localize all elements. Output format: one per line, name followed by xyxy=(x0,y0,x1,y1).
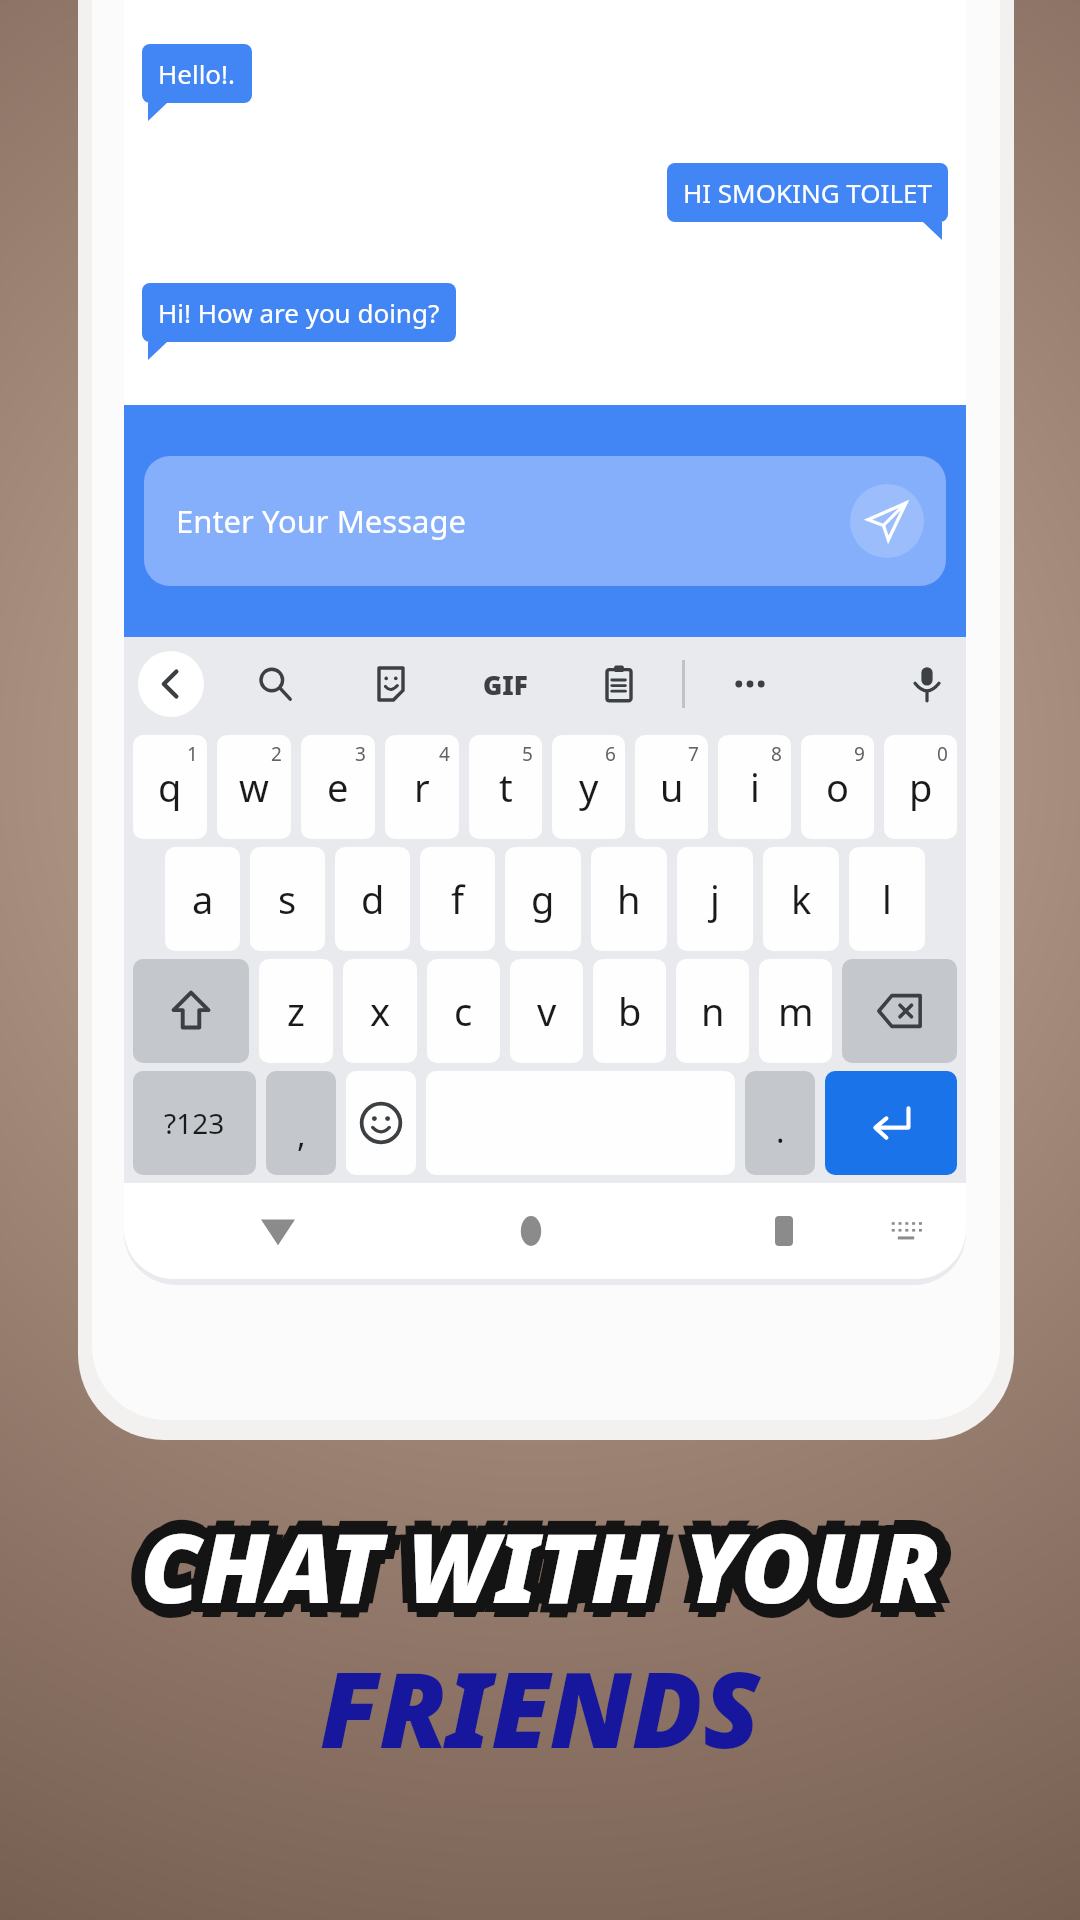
button[interactable]: i xyxy=(718,735,791,839)
staticText: CHAT WITH YOUR xyxy=(140,1500,941,1631)
staticText: h xyxy=(617,873,641,925)
button[interactable]: h xyxy=(591,847,667,951)
staticText: 4 xyxy=(439,741,450,767)
button[interactable]: g xyxy=(505,847,581,951)
button[interactable]: Search xyxy=(250,659,300,709)
button[interactable]: Back xyxy=(138,651,204,717)
button[interactable]: a xyxy=(165,847,240,951)
button[interactable]: b xyxy=(593,959,666,1063)
staticText: CHAT WITH YOUR xyxy=(126,1500,927,1631)
staticText: 3 xyxy=(355,741,366,767)
staticText: v xyxy=(537,985,557,1037)
button[interactable]: n xyxy=(676,959,749,1063)
button[interactable]: , xyxy=(266,1071,336,1175)
button[interactable]: Hello!. xyxy=(142,44,252,103)
button[interactable]: Stickers xyxy=(366,659,416,709)
staticText: 2 xyxy=(271,741,282,767)
staticText: m xyxy=(778,985,814,1037)
button[interactable]: Hide keyboard xyxy=(250,1203,306,1259)
staticText: CHAT WITH YOUR xyxy=(131,1509,932,1640)
button[interactable]: c xyxy=(427,959,500,1063)
button[interactable]: p xyxy=(884,735,957,839)
staticText: Hello!. xyxy=(158,56,236,91)
button[interactable]: u xyxy=(635,735,708,839)
staticText: a xyxy=(192,873,214,925)
staticText: y xyxy=(579,761,599,813)
button[interactable]: GIF xyxy=(482,661,528,707)
staticText: 7 xyxy=(688,741,699,767)
button[interactable]: l xyxy=(849,847,925,951)
button[interactable]: Emoji xyxy=(346,1071,416,1175)
button[interactable]: k xyxy=(763,847,839,951)
staticText: o xyxy=(826,761,849,813)
button[interactable]: Voice input xyxy=(902,659,952,709)
staticText: CHAT WITH YOUR xyxy=(131,1491,932,1622)
staticText: r xyxy=(414,761,430,813)
staticText: 5 xyxy=(522,741,533,767)
staticText: t xyxy=(499,761,513,813)
button[interactable]: Clipboard xyxy=(594,659,644,709)
staticText: q xyxy=(158,761,182,813)
button[interactable]: r xyxy=(385,735,459,839)
staticText: 0 xyxy=(937,741,948,767)
staticText: 1 xyxy=(187,741,198,767)
staticText: j xyxy=(710,873,720,925)
staticText: ?123 xyxy=(164,1104,225,1142)
button[interactable]: Switch keyboard xyxy=(878,1203,934,1259)
button[interactable]: Home xyxy=(503,1203,559,1259)
staticText: 8 xyxy=(771,741,782,767)
staticText: g xyxy=(531,873,555,925)
button[interactable]: Send xyxy=(850,484,924,558)
button[interactable]: m xyxy=(759,959,832,1063)
staticText: b xyxy=(618,985,642,1037)
staticText: c xyxy=(454,985,473,1037)
button[interactable]: More options xyxy=(725,659,775,709)
button[interactable]: . xyxy=(745,1071,815,1175)
button[interactable]: j xyxy=(677,847,753,951)
staticText: CHAT WITH YOUR xyxy=(140,1486,941,1617)
button[interactable]: Backspace xyxy=(842,959,957,1063)
staticText: z xyxy=(287,985,305,1037)
button[interactable]: f xyxy=(420,847,495,951)
staticText: u xyxy=(660,761,684,813)
button[interactable]: Hi! How are you doing? xyxy=(142,283,456,342)
staticText: n xyxy=(701,985,725,1037)
button[interactable]: d xyxy=(335,847,410,951)
button[interactable]: Enter xyxy=(825,1071,957,1175)
staticText: CHAT WITH YOUR xyxy=(131,1500,932,1631)
staticText: e xyxy=(327,761,349,813)
staticText: HI SMOKING TOILET xyxy=(683,175,932,210)
button[interactable]: q xyxy=(133,735,207,839)
staticText: f xyxy=(451,873,465,925)
staticText: . xyxy=(776,1109,785,1153)
staticText: CHAT WITH YOUR xyxy=(149,1491,950,1622)
staticText: GIF xyxy=(483,667,528,702)
staticText: i xyxy=(750,761,760,813)
staticText: w xyxy=(239,761,269,813)
staticText: 6 xyxy=(605,741,616,767)
button[interactable]: w xyxy=(217,735,291,839)
button[interactable]: Shift xyxy=(133,959,249,1063)
staticText: Hi! How are you doing? xyxy=(158,295,440,330)
staticText: , xyxy=(297,1113,306,1157)
button[interactable]: Recents xyxy=(756,1203,812,1259)
button[interactable]: t xyxy=(469,735,542,839)
button[interactable]: y xyxy=(552,735,625,839)
staticText: 9 xyxy=(854,741,865,767)
button[interactable]: o xyxy=(801,735,874,839)
button[interactable]: x xyxy=(343,959,417,1063)
button[interactable]: z xyxy=(259,959,333,1063)
staticText: CHAT WITH YOUR xyxy=(140,1509,941,1640)
button[interactable]: Enter Your Message xyxy=(144,456,946,586)
staticText: CHAT WITH YOUR xyxy=(149,1509,950,1640)
button[interactable]: ?123 xyxy=(133,1071,256,1175)
staticText: d xyxy=(361,873,385,925)
button[interactable]: s xyxy=(250,847,325,951)
staticText: FRIENDS xyxy=(320,1637,760,1779)
button[interactable]: v xyxy=(510,959,583,1063)
button[interactable]: HI SMOKING TOILET xyxy=(667,163,948,222)
staticText: l xyxy=(882,873,892,925)
button[interactable]: e xyxy=(301,735,375,839)
staticText: CHAT WITH YOUR xyxy=(140,1491,941,1622)
